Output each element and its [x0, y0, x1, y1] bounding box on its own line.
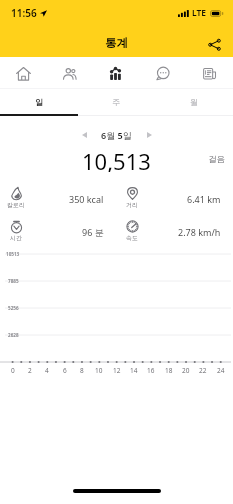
button[interactable]: Messages [139, 57, 186, 88]
button[interactable]: Home [0, 57, 46, 88]
staticText: 속도 [126, 234, 138, 242]
staticText: 10513 [6, 251, 20, 257]
button[interactable]: Friends [46, 57, 92, 88]
staticText: 12 [113, 366, 121, 375]
staticText: 2 [28, 366, 32, 375]
staticText: 6.41 km [187, 193, 221, 205]
button[interactable]: News [186, 57, 233, 88]
button[interactable]: Next day [140, 126, 158, 144]
staticText: 22 [199, 366, 207, 375]
staticText: 16 [147, 366, 155, 375]
staticText: 18 [165, 366, 173, 375]
staticText: 96 분 [82, 226, 104, 238]
staticText: 14 [130, 366, 138, 375]
button[interactable]: Share [203, 33, 225, 55]
staticText: 주 [112, 97, 120, 107]
button[interactable]: 일 [0, 89, 77, 114]
staticText: 11:56 [11, 6, 37, 20]
staticText: 칼로리 [7, 201, 25, 209]
staticText: 350 kcal [69, 193, 104, 205]
staticText: 4 [45, 366, 49, 375]
staticText: 일 [35, 97, 43, 107]
staticText: 걸음 [208, 154, 225, 165]
button[interactable]: 속도 [116, 215, 233, 248]
button[interactable]: 주 [77, 89, 155, 114]
staticText: 2628 [8, 332, 19, 338]
button[interactable]: 월 [155, 89, 233, 114]
staticText: 6월 5일 [101, 129, 132, 141]
staticText: 0 [11, 366, 15, 375]
staticText: 7885 [8, 278, 19, 284]
staticText: 시간 [10, 234, 22, 242]
staticText: LTE [192, 7, 207, 19]
button[interactable]: Previous day [75, 126, 93, 144]
staticText: 2.78 km/h [178, 226, 221, 238]
staticText: 8 [80, 366, 84, 375]
button[interactable]: 시간 [0, 215, 116, 248]
staticText: 6 [63, 366, 67, 375]
staticText: 통계 [105, 36, 128, 50]
button[interactable]: 거리 [116, 182, 233, 215]
staticText: 10,513 [82, 146, 151, 172]
button[interactable]: Statistics [92, 57, 139, 88]
staticText: 20 [182, 366, 190, 375]
staticText: 거리 [126, 201, 138, 209]
button[interactable]: 칼로리 [0, 182, 116, 215]
staticText: 5256 [8, 305, 19, 311]
staticText: 10 [95, 366, 103, 375]
staticText: 월 [190, 97, 198, 107]
staticText: 24 [217, 366, 225, 375]
